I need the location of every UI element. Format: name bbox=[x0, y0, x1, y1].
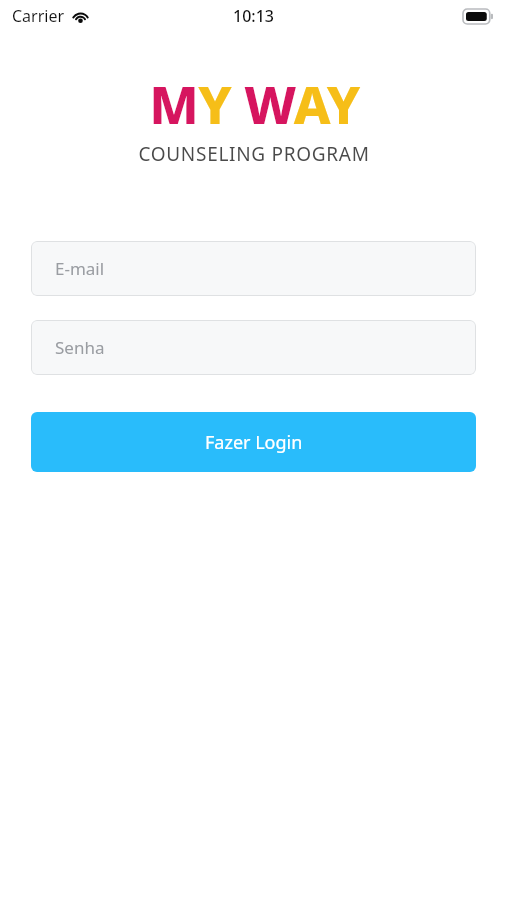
staticText: Carrier bbox=[12, 5, 65, 27]
staticText: MY WAY bbox=[149, 68, 360, 139]
staticText: E-mail bbox=[55, 257, 105, 280]
staticText: 10:13 bbox=[233, 5, 274, 27]
button[interactable]: Fazer Login bbox=[31, 412, 476, 472]
staticText: Senha bbox=[55, 336, 105, 359]
staticText: Fazer Login bbox=[205, 430, 303, 455]
other: Battery bbox=[463, 9, 493, 24]
staticText: COUNSELING PROGRAM bbox=[138, 141, 370, 167]
button[interactable]: Senha bbox=[31, 320, 476, 375]
button[interactable]: E-mail bbox=[31, 241, 476, 296]
